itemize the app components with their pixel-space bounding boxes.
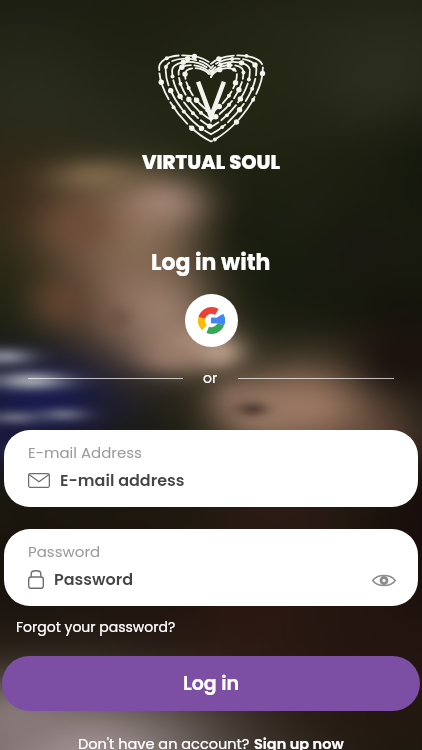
staticText: Password bbox=[28, 541, 101, 562]
staticText: VIRTUAL SOUL bbox=[142, 149, 281, 176]
staticText: Password bbox=[54, 568, 134, 590]
staticText: Log in with bbox=[151, 247, 271, 278]
button[interactable]: Sign in with Google bbox=[185, 294, 238, 347]
button[interactable]: Show password bbox=[368, 564, 400, 596]
staticText: Sign up now bbox=[254, 734, 344, 750]
staticText: Don't have an account? bbox=[78, 734, 254, 750]
button[interactable]: Password bbox=[4, 529, 418, 606]
button[interactable]: Don't have an account? bbox=[78, 734, 344, 750]
button[interactable]: E-mail Address bbox=[4, 430, 418, 507]
staticText: Log in bbox=[183, 670, 240, 697]
staticText: or bbox=[203, 368, 218, 388]
staticText: E-mail address bbox=[60, 469, 185, 491]
button[interactable]: Forgot your password? bbox=[16, 617, 176, 637]
staticText: E-mail Address bbox=[28, 442, 142, 463]
button[interactable]: Log in bbox=[2, 656, 420, 711]
